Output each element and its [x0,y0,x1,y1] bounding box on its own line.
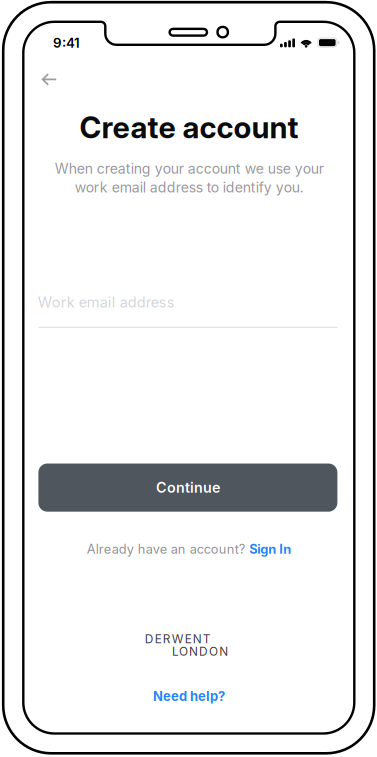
staticText: Continue [156,479,220,496]
staticText: LONDON [172,644,228,659]
staticText: Need help? [153,688,225,704]
staticText: Work email address [38,293,175,311]
button[interactable]: Sign In [249,541,291,557]
staticText: DERWENT [145,632,211,646]
staticText: Sign In [249,541,291,557]
staticText: 9:41 [53,35,80,51]
button[interactable]: Need help? [0,688,377,704]
staticText: Create account [79,109,298,145]
staticText: Already have an account? [87,541,246,557]
staticText: When creating your account we use your w… [54,160,323,196]
button[interactable]: Continue [38,463,337,512]
button[interactable]: Back [34,65,65,94]
